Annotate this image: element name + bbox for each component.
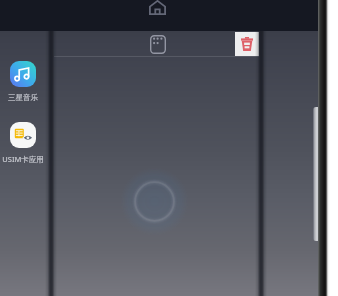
button[interactable]: Keypad bbox=[147, 32, 169, 56]
button[interactable]: Home bbox=[149, 0, 166, 15]
staticText: USIM卡应用 bbox=[2, 154, 44, 164]
button[interactable]: Delete bbox=[235, 32, 259, 56]
button[interactable]: USIM卡应用 bbox=[0, 122, 47, 164]
staticText: 三星音乐 bbox=[8, 93, 38, 102]
button[interactable]: 三星音乐 bbox=[0, 61, 47, 102]
